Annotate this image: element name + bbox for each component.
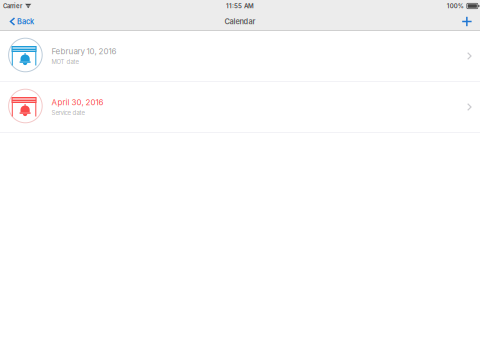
staticText: Carrier [3, 2, 22, 10]
staticText: 100% [447, 2, 464, 10]
button[interactable]: April 30, 2016 [0, 82, 480, 133]
staticText: Service date [51, 109, 84, 116]
button[interactable]: Add [455, 12, 480, 30]
staticText: Back [17, 17, 34, 26]
staticText: Calendar [224, 17, 255, 26]
staticText: February 10, 2016 [51, 46, 116, 56]
button[interactable]: Back [0, 12, 41, 30]
staticText: April 30, 2016 [51, 97, 103, 107]
button[interactable]: February 10, 2016 [0, 31, 480, 82]
staticText: MOT date [51, 58, 78, 65]
staticText: 11:55 AM [226, 2, 254, 10]
